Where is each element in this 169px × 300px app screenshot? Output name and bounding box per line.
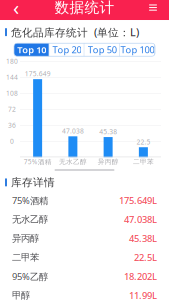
staticText: Top 50 (88, 43, 117, 56)
button[interactable]: Top 50 (84, 43, 120, 56)
staticText: 甲醇 (12, 290, 30, 300)
staticText: 47.038L (124, 213, 157, 226)
staticText: 二甲苯 (12, 252, 39, 263)
staticText: 75%酒精 (12, 194, 48, 207)
button[interactable]: 菜单 (140, 0, 166, 20)
staticText: 11.99L (129, 289, 157, 300)
button[interactable]: 甲醇 (0, 286, 169, 300)
button[interactable]: 75%酒精 (0, 191, 169, 210)
staticText: 36 (8, 121, 16, 130)
button[interactable]: 二甲苯 (0, 248, 169, 267)
staticText: 47.038 (62, 126, 84, 135)
staticText: Top 10 (17, 43, 46, 56)
button[interactable]: Top 10 (14, 43, 49, 56)
staticText: 108 (6, 89, 18, 98)
staticText: 144 (6, 73, 18, 82)
staticText: 72 (8, 105, 16, 114)
staticText: 75%酒精 (24, 157, 52, 166)
staticText: 库存详情 (11, 176, 55, 189)
staticText: 95%乙醇 (12, 270, 48, 283)
button[interactable]: 无水乙醇 (0, 210, 169, 229)
button[interactable]: 95%乙醇 (0, 267, 169, 286)
staticText: 22.5 (136, 137, 150, 146)
staticText: 180 (6, 57, 18, 66)
staticText: 45.38 (99, 127, 117, 136)
staticText: Top 100 (120, 43, 154, 56)
button[interactable]: Top 20 (49, 43, 84, 56)
staticText: ‹ (13, 0, 19, 21)
staticText: 危化品库存统计 (单位：L) (11, 25, 139, 39)
staticText: 二甲苯 (133, 158, 154, 166)
staticText: 无水乙醇 (12, 214, 48, 225)
staticText: 45.38L (129, 232, 157, 245)
staticText: 异丙醇 (12, 233, 39, 244)
staticText: 175.649L (119, 194, 157, 207)
staticText: 175.649 (25, 69, 51, 78)
staticText: 18.202L (124, 270, 157, 283)
staticText: 无水乙醇 (59, 158, 87, 166)
staticText: 数据统计 (54, 0, 114, 17)
button[interactable]: 异丙醇 (0, 229, 169, 248)
staticText: 22.5L (134, 251, 157, 264)
staticText: Top 20 (52, 43, 81, 56)
staticText: 异丙醇 (98, 158, 119, 166)
button[interactable]: Top 100 (120, 43, 155, 56)
staticText: 0 (10, 137, 14, 146)
button[interactable]: 返回 (3, 0, 29, 20)
